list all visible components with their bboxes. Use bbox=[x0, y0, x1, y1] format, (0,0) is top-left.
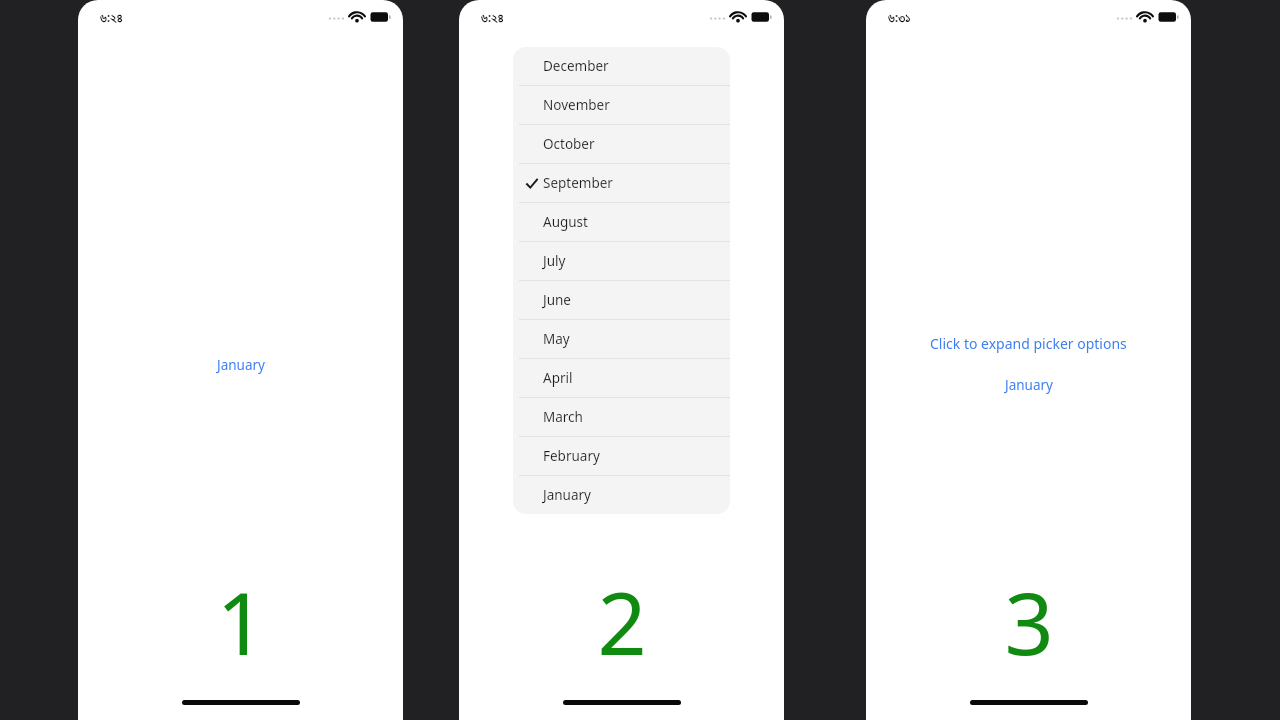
button[interactable]: March bbox=[513, 398, 730, 437]
staticText: October bbox=[543, 135, 595, 153]
staticText: ৬:৩১ bbox=[888, 8, 911, 26]
staticText: August bbox=[543, 213, 588, 231]
staticText: January bbox=[543, 486, 591, 504]
staticText: 2 bbox=[597, 563, 647, 680]
button[interactable]: August bbox=[513, 203, 730, 242]
button[interactable]: May bbox=[513, 320, 730, 359]
button[interactable]: January bbox=[513, 476, 730, 514]
button[interactable]: April bbox=[513, 359, 730, 398]
button[interactable]: December bbox=[513, 47, 730, 86]
other: Home bbox=[970, 700, 1088, 705]
other: Home bbox=[182, 700, 300, 705]
staticText: 3 bbox=[1004, 563, 1054, 680]
button[interactable]: November bbox=[513, 86, 730, 125]
staticText: September bbox=[543, 174, 613, 192]
button[interactable]: Click to expand picker options bbox=[930, 334, 1127, 353]
button[interactable]: January bbox=[217, 356, 265, 374]
staticText: ৬:২৪ bbox=[481, 8, 504, 26]
button[interactable]: June bbox=[513, 281, 730, 320]
staticText: February bbox=[543, 447, 600, 465]
staticText: May bbox=[543, 330, 570, 348]
staticText: 1 bbox=[216, 563, 266, 680]
staticText: ৬:২৪ bbox=[100, 8, 123, 26]
other: Home bbox=[563, 700, 681, 705]
button[interactable]: September bbox=[513, 164, 730, 203]
button[interactable]: January bbox=[1005, 376, 1053, 394]
button[interactable]: February bbox=[513, 437, 730, 476]
staticText: April bbox=[543, 369, 573, 387]
button[interactable]: July bbox=[513, 242, 730, 281]
staticText: July bbox=[543, 252, 566, 270]
button[interactable]: October bbox=[513, 125, 730, 164]
staticText: June bbox=[543, 291, 571, 309]
staticText: November bbox=[543, 96, 610, 114]
staticText: December bbox=[543, 57, 609, 75]
staticText: March bbox=[543, 408, 583, 426]
